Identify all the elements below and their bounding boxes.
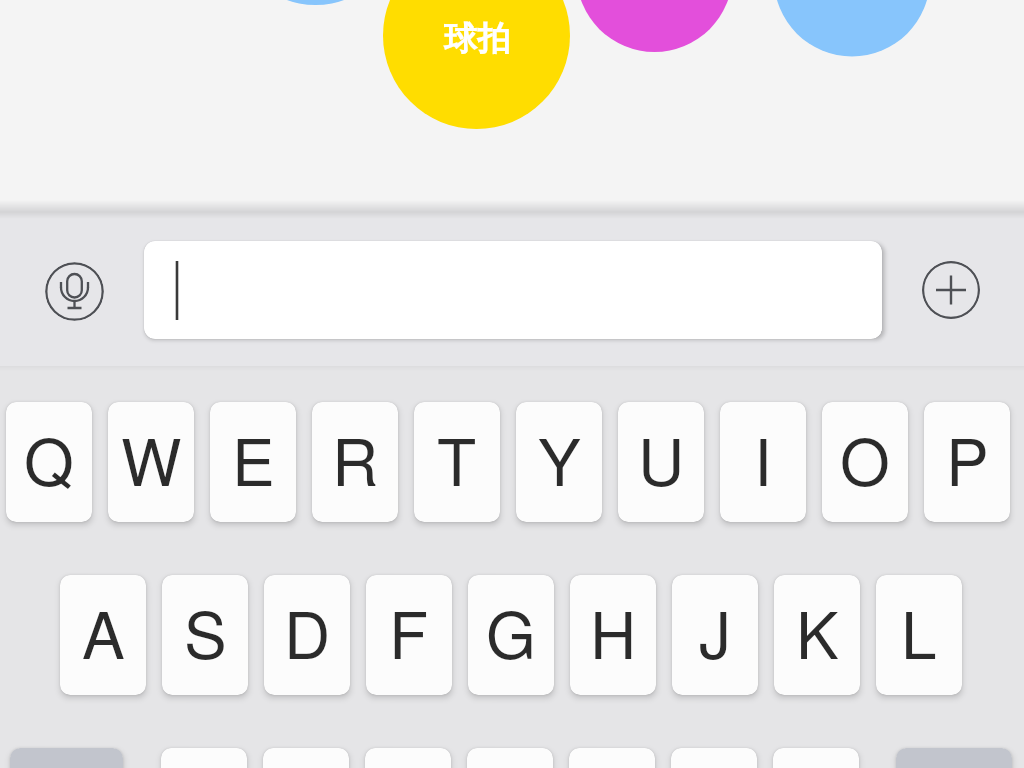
button[interactable]: Y	[516, 402, 602, 522]
button[interactable]: Shift	[10, 748, 123, 768]
button[interactable]: D	[264, 575, 350, 695]
button[interactable]: 球拍	[383, 0, 570, 76]
button[interactable]: I	[720, 402, 806, 522]
staticText: T	[437, 413, 477, 505]
staticText: W	[121, 413, 182, 505]
staticText: R	[332, 413, 379, 505]
button[interactable]: Message input field	[144, 241, 882, 339]
staticText: F	[389, 586, 429, 678]
button[interactable]: K	[774, 575, 860, 695]
staticText: I	[754, 413, 772, 505]
button[interactable]: L	[876, 575, 962, 695]
button[interactable]: A	[60, 575, 146, 695]
button[interactable]: B	[569, 748, 655, 768]
button[interactable]: Voice input	[45, 262, 104, 321]
button[interactable]: U	[618, 402, 704, 522]
button[interactable]: H	[570, 575, 656, 695]
button[interactable]: X	[263, 748, 349, 768]
staticText: D	[284, 586, 331, 678]
staticText: A	[82, 586, 125, 678]
button[interactable]: V	[467, 748, 553, 768]
button[interactable]: J	[672, 575, 758, 695]
button[interactable]: Q	[6, 402, 92, 522]
button[interactable]: Backspace	[896, 748, 1012, 768]
staticText: H	[590, 586, 637, 678]
staticText: K	[796, 586, 839, 678]
button[interactable]: Add	[922, 261, 980, 319]
staticText: E	[232, 413, 275, 505]
button[interactable]: T	[414, 402, 500, 522]
button[interactable]: Category	[287, 0, 344, 6]
staticText: G	[486, 586, 536, 678]
button[interactable]: M	[773, 748, 859, 768]
staticText: Y	[538, 413, 581, 505]
button[interactable]: C	[365, 748, 451, 768]
button[interactable]: S	[162, 575, 248, 695]
button[interactable]: O	[822, 402, 908, 522]
button[interactable]: Category	[777, 0, 927, 57]
staticText: U	[638, 413, 685, 505]
button[interactable]: E	[210, 402, 296, 522]
button[interactable]: R	[312, 402, 398, 522]
staticText: Q	[24, 413, 74, 505]
staticText: J	[699, 586, 731, 678]
button[interactable]: F	[366, 575, 452, 695]
button[interactable]: P	[924, 402, 1010, 522]
staticText: L	[901, 586, 937, 678]
button[interactable]: W	[108, 402, 194, 522]
button[interactable]: N	[671, 748, 757, 768]
button[interactable]: Category	[581, 0, 728, 53]
staticText: O	[840, 413, 890, 505]
button[interactable]: Z	[161, 748, 247, 768]
staticText: S	[184, 586, 227, 678]
button[interactable]: G	[468, 575, 554, 695]
staticText: P	[946, 413, 989, 505]
staticText: 球拍	[444, 18, 510, 60]
